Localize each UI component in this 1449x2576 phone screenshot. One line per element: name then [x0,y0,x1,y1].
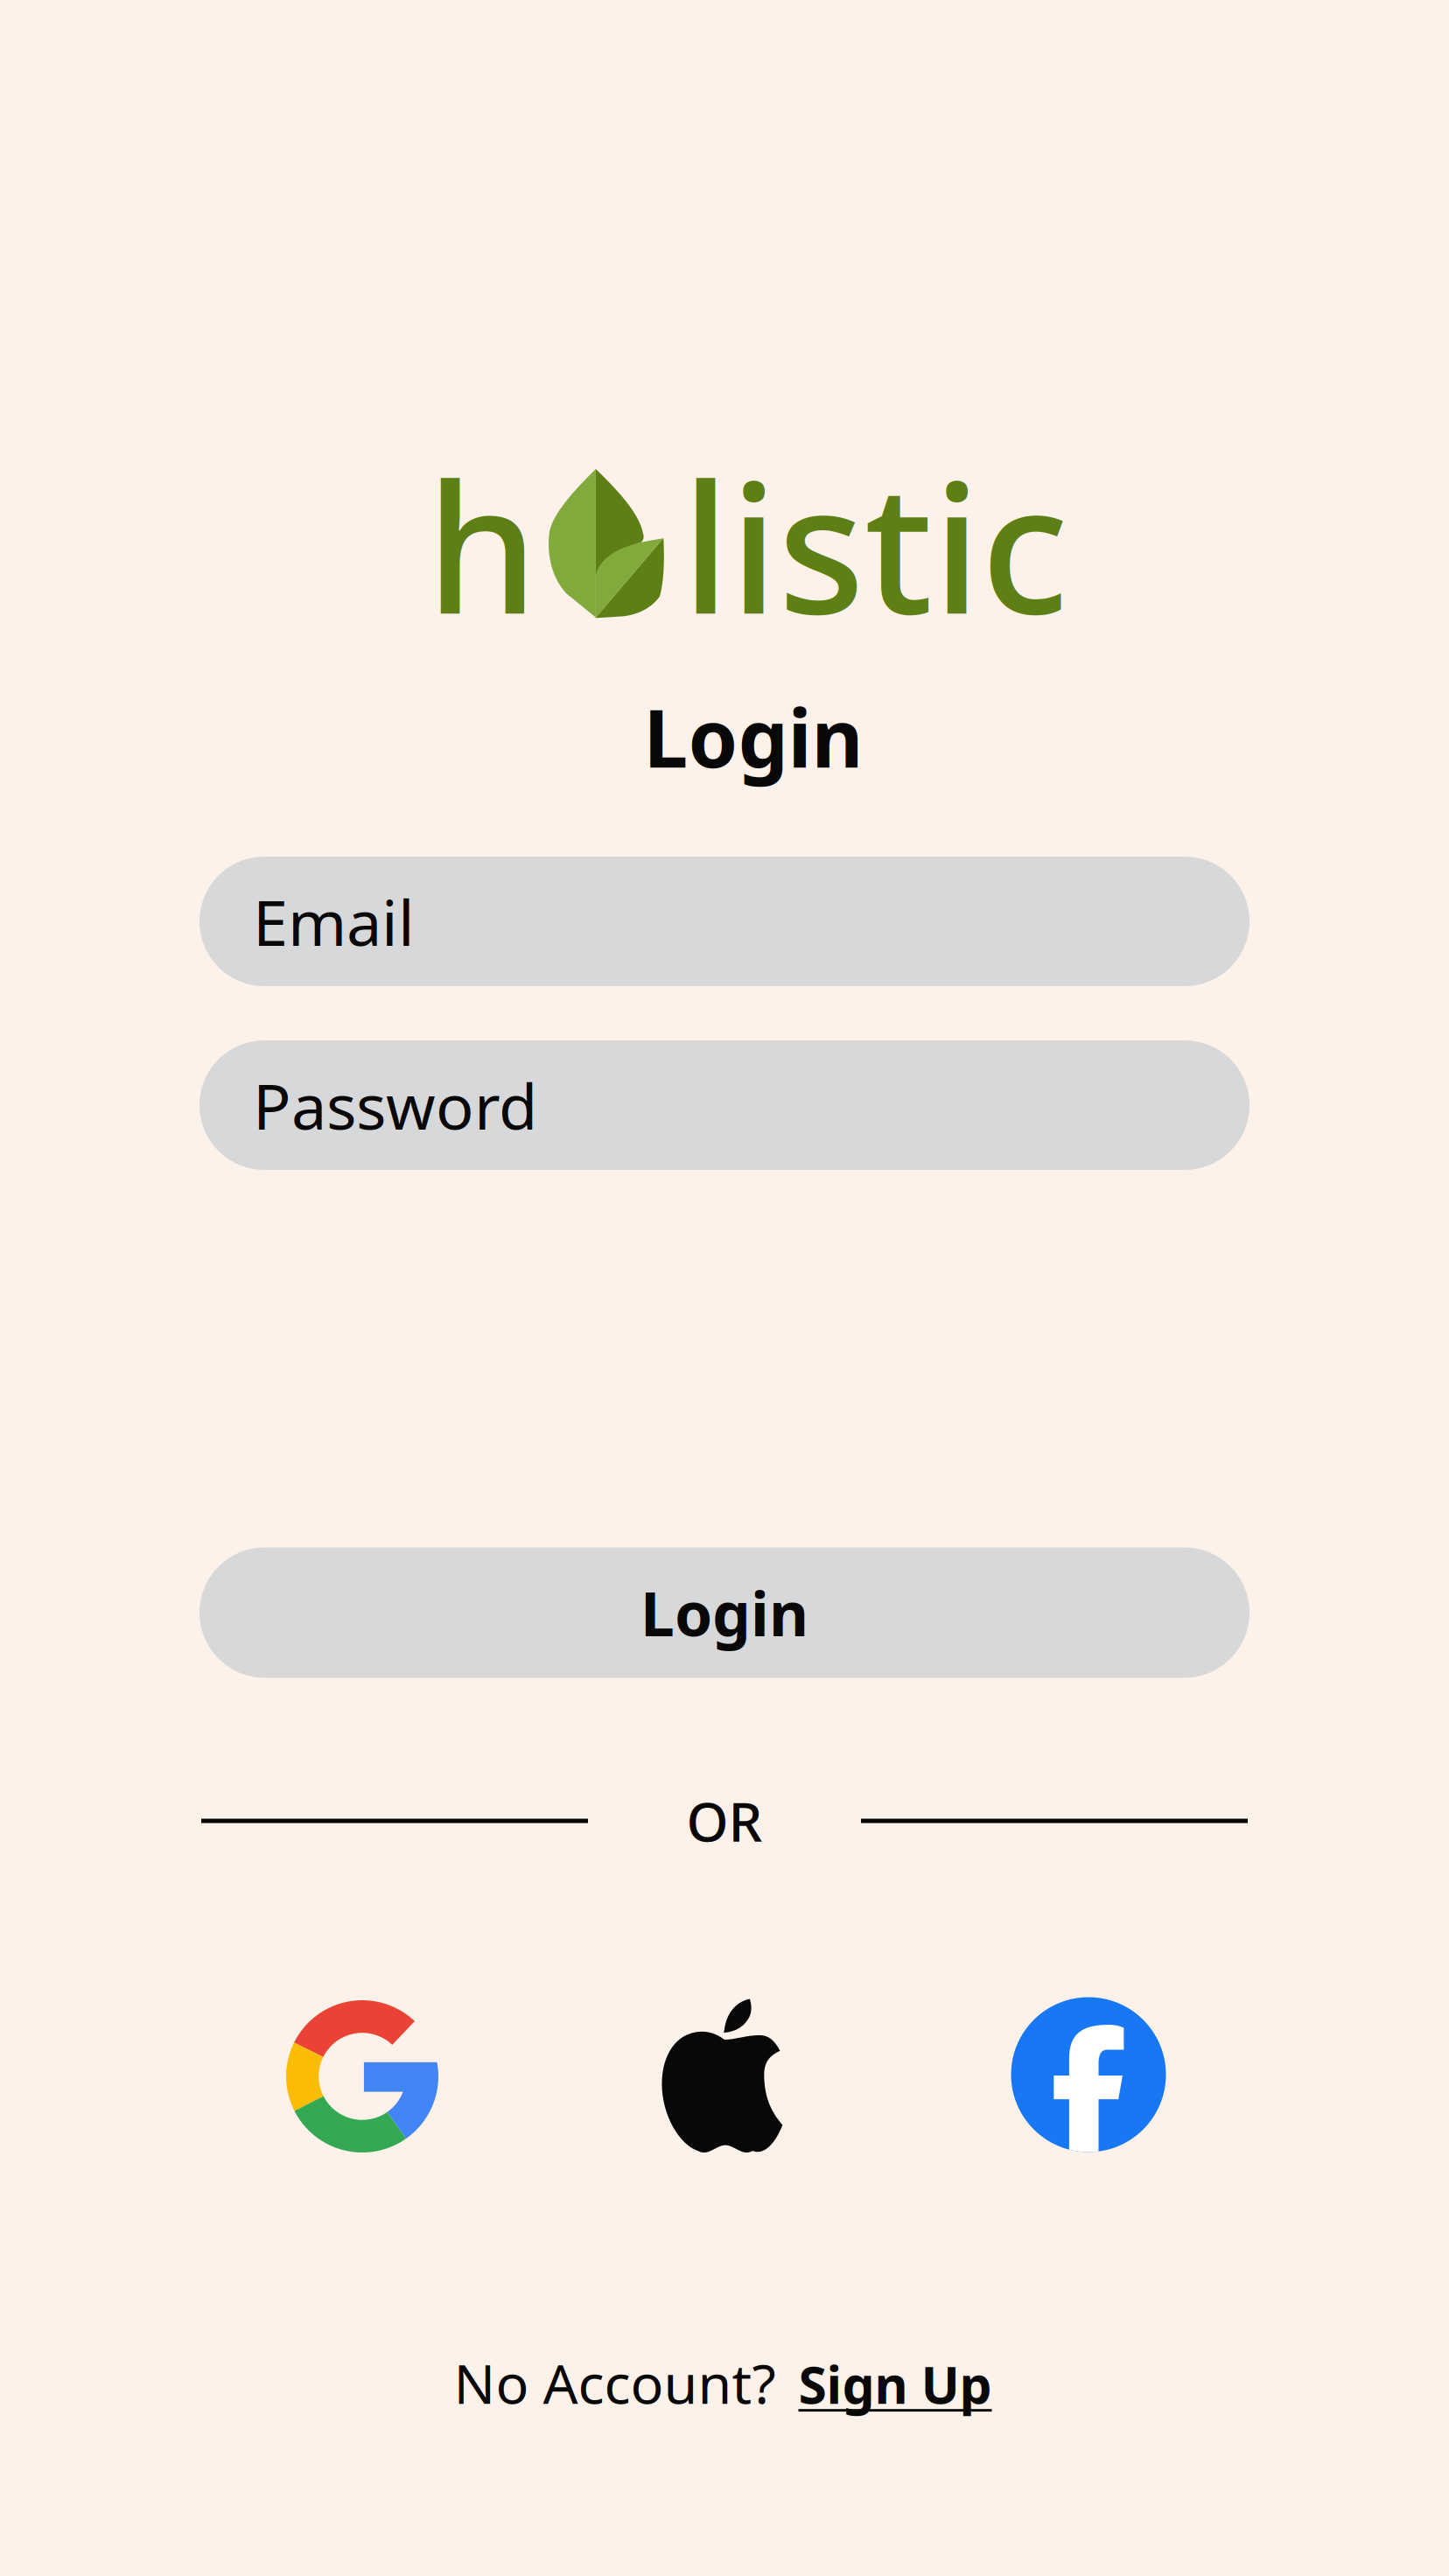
button[interactable]: Continue with Google [286,2000,438,2152]
button[interactable]: Password [199,1040,1249,1170]
button[interactable]: Continue with Apple [661,1998,785,2152]
staticText: Login [640,1572,808,1653]
staticText: Login [644,684,863,789]
staticText: Sign Up [798,2350,992,2418]
staticText: No Account? [454,2346,776,2419]
button[interactable]: Sign Up [798,2350,992,2418]
staticText: OR [686,1785,763,1856]
button[interactable]: Continue with Facebook [1011,1997,1166,2152]
staticText: Email [253,880,415,963]
button[interactable]: Email [199,857,1249,986]
staticText: h [426,426,538,663]
button[interactable]: Login [199,1547,1249,1678]
staticText: Password [253,1063,537,1147]
staticText: listic [682,426,1068,663]
